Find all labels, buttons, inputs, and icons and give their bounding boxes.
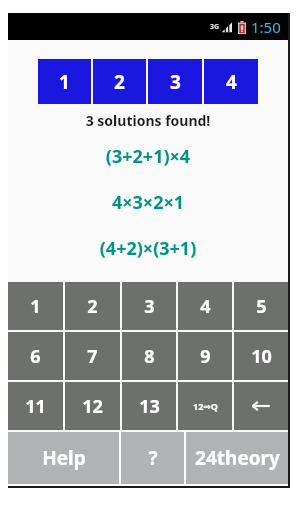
staticText: 2 [114, 69, 125, 95]
staticText: 7 [87, 344, 98, 369]
button[interactable]: 12⇒Q [178, 382, 232, 430]
button[interactable]: 24theory [186, 432, 288, 484]
button[interactable]: 4 [204, 59, 258, 104]
staticText: ? [148, 445, 158, 471]
staticText: 24theory [195, 445, 280, 471]
button[interactable]: 7 [65, 332, 120, 380]
button[interactable]: 9 [178, 332, 232, 380]
staticText: 10 [251, 344, 272, 369]
button[interactable]: 1 [8, 282, 63, 330]
staticText: 4 [200, 294, 211, 319]
staticText: 1:50 [251, 17, 281, 37]
staticText: 6 [30, 344, 41, 369]
button[interactable]: 4×3×2×1 [8, 190, 288, 236]
staticText: 5 [256, 294, 267, 319]
staticText: 13 [139, 394, 160, 419]
button[interactable]: 5 [234, 282, 288, 330]
button[interactable]: ? [121, 432, 184, 484]
staticText: 3 [170, 69, 181, 95]
button[interactable]: 6 [8, 332, 63, 380]
staticText: 3 [144, 294, 155, 319]
button[interactable]: 10 [234, 332, 288, 380]
button[interactable]: 2 [93, 59, 146, 104]
button[interactable]: Backspace [234, 382, 288, 430]
staticText: 12 [82, 394, 103, 419]
button[interactable]: 2 [65, 282, 120, 330]
button[interactable]: (4+2)×(3+1) [8, 236, 288, 282]
button[interactable]: 11 [8, 382, 63, 430]
staticText: 3 solutions found! [8, 111, 288, 130]
button[interactable]: 12 [65, 382, 120, 430]
button[interactable]: Help [8, 432, 119, 484]
button[interactable]: 3 [148, 59, 202, 104]
button[interactable]: 8 [122, 332, 176, 380]
button[interactable]: 3 [122, 282, 176, 330]
staticText: Help [42, 445, 86, 471]
button[interactable]: 1 [38, 59, 91, 104]
button[interactable]: 4 [178, 282, 232, 330]
staticText: 4×3×2×1 [8, 190, 288, 215]
staticText: 1 [30, 294, 41, 319]
staticText: 11 [25, 394, 46, 419]
staticText: 4 [226, 69, 237, 95]
staticText: 8 [144, 344, 155, 369]
staticText: (3+2+1)×4 [8, 144, 288, 169]
button[interactable]: 13 [122, 382, 176, 430]
staticText: 2 [87, 294, 98, 319]
staticText: 1 [59, 69, 70, 95]
staticText: 9 [200, 344, 211, 369]
staticText: (4+2)×(3+1) [8, 236, 288, 261]
button[interactable]: (3+2+1)×4 [8, 144, 288, 190]
staticText: 3G [210, 22, 220, 32]
staticText: 12⇒Q [193, 400, 218, 412]
